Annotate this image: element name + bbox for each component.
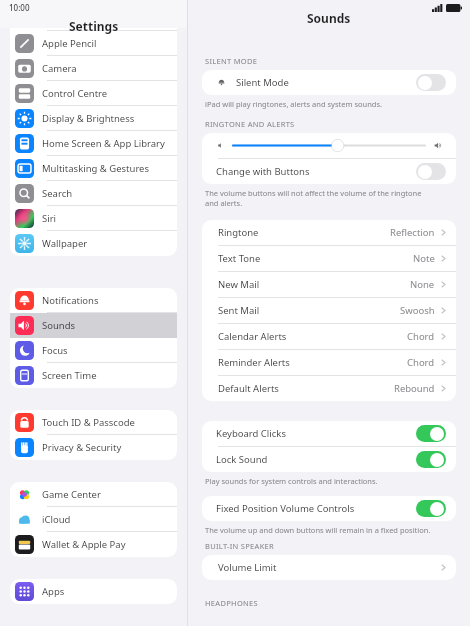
staticText: Privacy & Security [42, 441, 122, 454]
button[interactable]: Text Tone [202, 246, 456, 271]
button[interactable]: Focus [10, 338, 177, 363]
button[interactable]: On [416, 500, 446, 517]
button[interactable]: iCloud [10, 507, 177, 532]
button[interactable]: Screen Time [10, 363, 177, 388]
staticText: Wallpaper [42, 237, 88, 250]
staticText: Chord [407, 356, 435, 369]
button[interactable]: Search [10, 181, 177, 206]
staticText: Notifications [42, 294, 99, 307]
staticText: Fixed Position Volume Controls [216, 502, 355, 515]
staticText: Change with Buttons [216, 165, 310, 178]
button[interactable]: Notifications [10, 288, 177, 313]
button[interactable]: Apps [10, 579, 177, 604]
button[interactable]: Off [416, 163, 446, 180]
staticText: BUILT-IN SPEAKER [205, 541, 275, 551]
button[interactable]: Reminder Alerts [202, 350, 456, 375]
staticText: FaceTime [42, 12, 85, 25]
staticText: Sounds [42, 319, 76, 332]
staticText: iCloud [42, 513, 71, 526]
button[interactable]: Keyboard Clicks [202, 421, 456, 446]
staticText: Chord [407, 330, 435, 343]
button[interactable]: Wallpaper [10, 231, 177, 256]
button[interactable]: Home Screen & App Library [10, 131, 177, 156]
staticText: 10:00 [9, 2, 30, 13]
staticText: Text Tone [218, 252, 261, 265]
staticText: iPad will play ringtones, alerts and sys… [205, 99, 383, 109]
staticText: Default Alerts [218, 382, 279, 395]
staticText: Display & Brightness [42, 112, 135, 125]
button[interactable]: FaceTime [10, 6, 177, 31]
staticText: Control Centre [42, 87, 108, 100]
staticText: Home Screen & App Library [42, 137, 165, 150]
staticText: HEADPHONES [205, 598, 258, 608]
staticText: Game Center [42, 488, 101, 501]
button[interactable]: Sent Mail [202, 298, 456, 323]
button[interactable]: Privacy & Security [10, 435, 177, 460]
staticText: Camera [42, 62, 77, 75]
button[interactable]: Default Alerts [202, 376, 456, 401]
button[interactable]: Ringtone [202, 220, 456, 245]
staticText: Silent Mode [236, 76, 289, 89]
staticText: Settings [69, 18, 119, 34]
staticText: New Mail [218, 278, 260, 291]
staticText: Sounds [307, 10, 351, 26]
staticText: RINGTONE AND ALERTS [205, 119, 295, 129]
staticText: Reflection [390, 226, 435, 239]
button[interactable]: Wallet & Apple Pay [10, 532, 177, 557]
staticText: Keyboard Clicks [216, 427, 286, 440]
staticText: Ringtone [218, 226, 259, 239]
button[interactable]: Control Centre [10, 81, 177, 106]
staticText: Screen Time [42, 369, 97, 382]
staticText: The volume buttons will not affect the v… [205, 188, 422, 208]
staticText: Calendar Alerts [218, 330, 287, 343]
button[interactable]: Lock Sound [202, 447, 456, 472]
button[interactable]: Display & Brightness [10, 106, 177, 131]
staticText: Apple Pencil [42, 37, 97, 50]
button[interactable]: Change with Buttons [202, 159, 456, 184]
button[interactable]: On [416, 451, 446, 468]
button[interactable]: Sounds [10, 313, 177, 338]
staticText: Note [413, 252, 435, 265]
button[interactable]: On [416, 425, 446, 442]
button[interactable]: Fixed Position Volume Controls [202, 496, 456, 521]
staticText: Siri [42, 212, 57, 225]
button[interactable]: Volume Limit [202, 555, 456, 580]
staticText: Swoosh [400, 304, 435, 317]
staticText: Rebound [394, 382, 435, 395]
button[interactable]: Apple Pencil [10, 31, 177, 56]
staticText: Volume Limit [218, 561, 277, 574]
staticText: Search [42, 187, 73, 200]
staticText: Wallet & Apple Pay [42, 538, 126, 551]
staticText: Touch ID & Passcode [42, 416, 135, 429]
button[interactable]: Off [416, 74, 446, 91]
staticText: Sent Mail [218, 304, 260, 317]
button[interactable]: Calendar Alerts [202, 324, 456, 349]
staticText: Play sounds for system controls and inte… [205, 476, 378, 486]
button[interactable]: Siri [10, 206, 177, 231]
staticText: Focus [42, 344, 68, 357]
button[interactable]: Touch ID & Passcode [10, 410, 177, 435]
staticText: Lock Sound [216, 453, 268, 466]
staticText: Apps [42, 585, 65, 598]
staticText: The volume up and down buttons will rema… [205, 525, 431, 535]
button[interactable]: Camera [10, 56, 177, 81]
staticText: Reminder Alerts [218, 356, 290, 369]
button[interactable]: New Mail [202, 272, 456, 297]
staticText: Multitasking & Gestures [42, 162, 150, 175]
staticText: SILENT MODE [205, 56, 258, 66]
button[interactable]: Silent Mode [202, 70, 456, 95]
button[interactable]: Game Center [10, 482, 177, 507]
button[interactable]: Multitasking & Gestures [10, 156, 177, 181]
staticText: None [410, 278, 435, 291]
